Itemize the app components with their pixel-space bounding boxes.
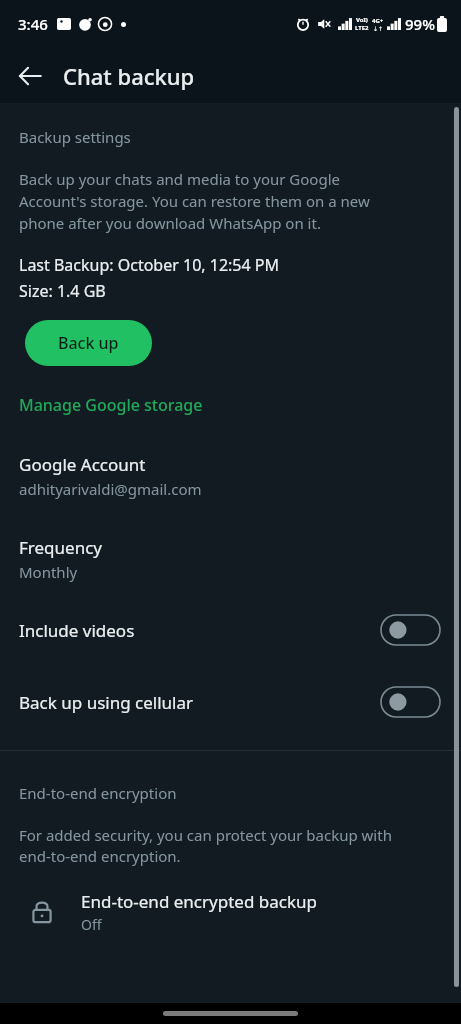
staticText: Monthly <box>19 562 78 582</box>
staticText: LTE2 <box>355 24 369 32</box>
staticText: End-to-end encryption <box>19 783 177 803</box>
staticText: Last Backup: October 10, 12:54 PM <box>19 254 280 276</box>
staticText: Back up <box>58 332 119 354</box>
staticText: 99% <box>405 14 435 34</box>
staticText: End-to-end encrypted backup <box>81 890 317 913</box>
staticText: adhityarivaldi@gmail.com <box>19 479 202 499</box>
staticText: 4G+ <box>372 17 384 25</box>
staticText: Size: 1.4 GB <box>19 280 106 302</box>
staticText: Frequency <box>19 536 102 559</box>
staticText: Back up your chats and media to your Goo… <box>19 169 370 234</box>
button[interactable]: Manage Google storage <box>0 391 461 419</box>
staticText: Google Account <box>19 453 146 476</box>
staticText: 3:46 <box>18 14 48 34</box>
button[interactable]: Back up <box>25 320 152 366</box>
button[interactable]: Include videos <box>0 614 461 646</box>
staticText: Include videos <box>19 619 380 642</box>
staticText: Off <box>81 915 102 934</box>
button[interactable]: End-to-end encrypted backup <box>0 885 461 939</box>
button[interactable]: Frequency <box>0 536 461 582</box>
staticText: Manage Google storage <box>19 394 203 416</box>
staticText: Chat backup <box>63 61 195 91</box>
staticText: ↓↑ <box>373 25 384 32</box>
staticText: Backup settings <box>19 127 131 147</box>
staticText: VoI) <box>356 16 368 24</box>
button[interactable]: Back up using cellular <box>0 686 461 718</box>
button[interactable]: Google Account <box>0 453 461 499</box>
staticText: Back up using cellular <box>19 691 380 714</box>
button[interactable]: Back <box>8 54 52 98</box>
staticText: For added security, you can protect your… <box>19 825 392 867</box>
